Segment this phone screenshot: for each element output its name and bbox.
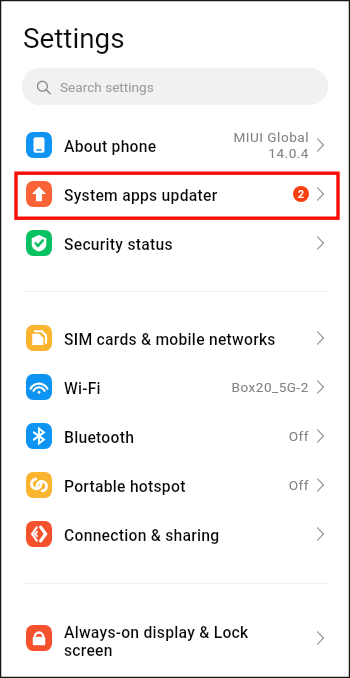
button[interactable]: Bluetooth bbox=[0, 411, 350, 460]
staticText: Off bbox=[288, 428, 309, 444]
staticText: Security status bbox=[64, 235, 316, 253]
staticText: MIUI Global bbox=[233, 129, 309, 145]
staticText: About phone bbox=[64, 137, 233, 155]
staticText: Always-on display & Lock screen bbox=[64, 623, 316, 659]
staticText: Bluetooth bbox=[64, 428, 288, 446]
staticText: SIM cards & mobile networks bbox=[64, 330, 316, 348]
staticText: 14.0.4 bbox=[268, 145, 309, 161]
button[interactable]: Always-on display & Lock screen bbox=[0, 605, 350, 671]
staticText: Settings bbox=[23, 22, 125, 55]
staticText: Connection & sharing bbox=[64, 526, 316, 544]
staticText: 2 bbox=[298, 188, 304, 200]
button[interactable]: Wi-Fi bbox=[0, 362, 350, 411]
button[interactable]: Portable hotspot bbox=[0, 460, 350, 509]
button[interactable]: Connection & sharing bbox=[0, 509, 350, 558]
staticText: Portable hotspot bbox=[64, 477, 288, 495]
staticText: System apps updater bbox=[64, 186, 293, 204]
button[interactable]: Search settings bbox=[22, 68, 328, 105]
button[interactable]: System apps updater bbox=[0, 169, 350, 218]
button[interactable]: SIM cards & mobile networks bbox=[0, 313, 350, 362]
staticText: Wi-Fi bbox=[64, 379, 231, 397]
staticText: Search settings bbox=[60, 79, 154, 95]
staticText: Box20_5G-2 bbox=[231, 379, 309, 395]
button[interactable]: Security status bbox=[0, 218, 350, 267]
staticText: Off bbox=[288, 477, 309, 493]
button[interactable]: About phone bbox=[0, 120, 350, 169]
